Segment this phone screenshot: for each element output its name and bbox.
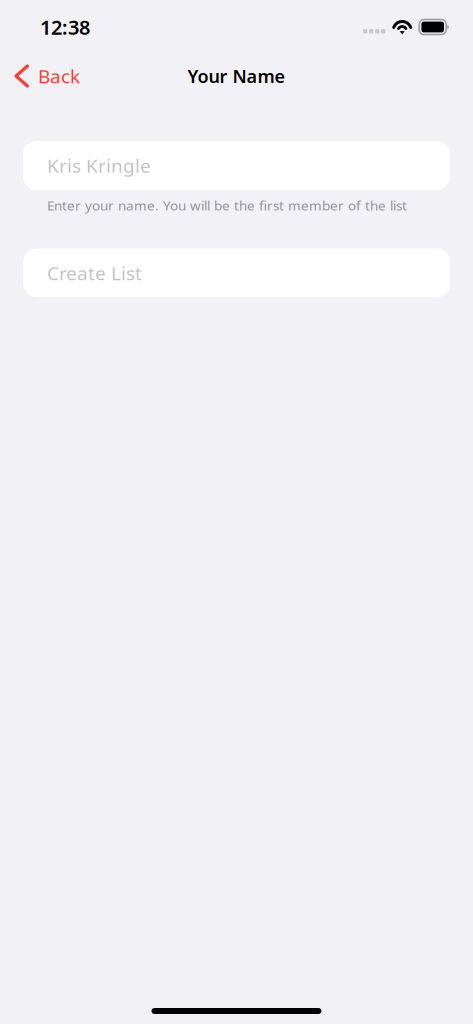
- button[interactable]: Create List: [23, 248, 450, 297]
- staticText: Kris Kringle: [47, 153, 151, 178]
- button[interactable]: Back: [0, 55, 92, 97]
- staticText: Your Name: [187, 64, 285, 88]
- button[interactable]: Kris Kringle: [23, 141, 450, 190]
- staticText: 12:38: [40, 13, 90, 41]
- staticText: Back: [38, 63, 80, 89]
- staticText: Enter your name. You will be the first m…: [47, 196, 407, 214]
- staticText: Create List: [47, 260, 142, 286]
